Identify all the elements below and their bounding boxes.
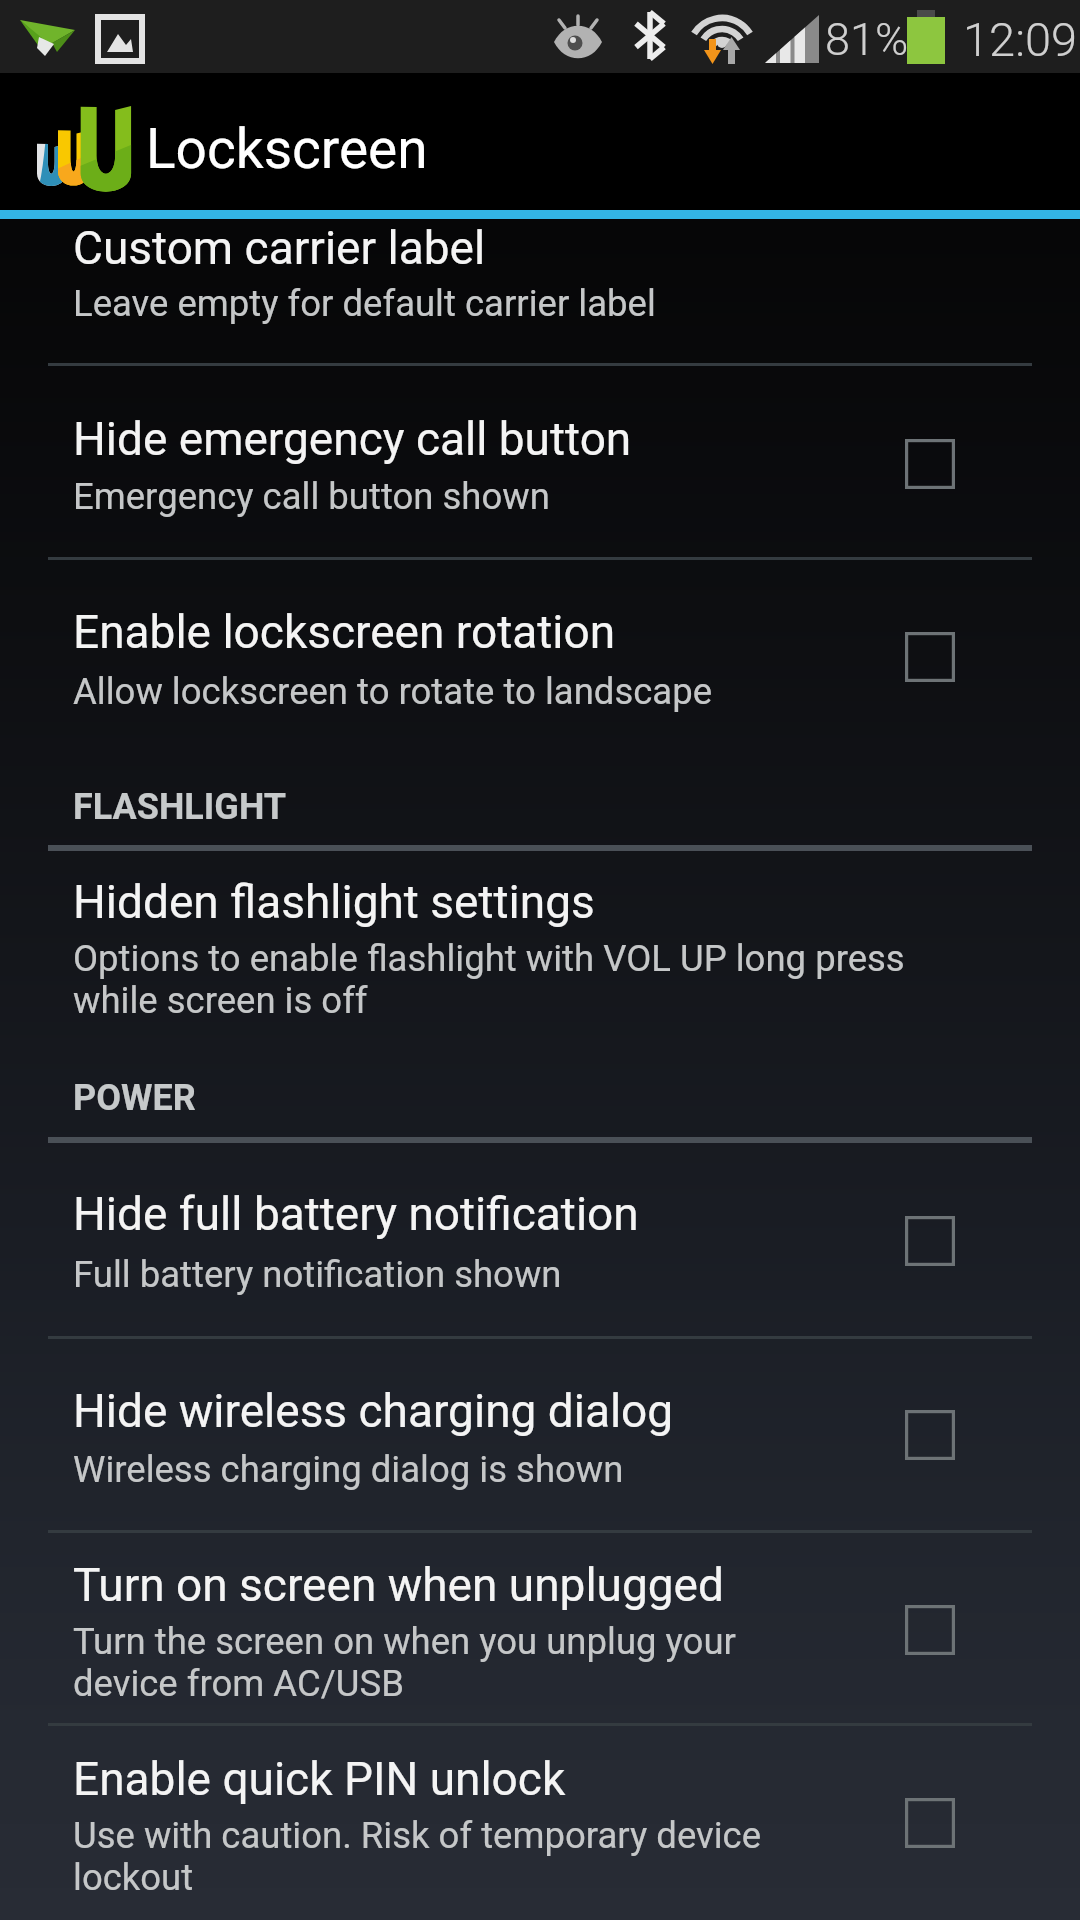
staticText: Turn the screen on when you unplug your … (73, 1621, 973, 1705)
staticText: Enable quick PIN unlock (73, 1752, 1080, 1806)
staticText: Hide emergency call button (73, 412, 1080, 466)
staticText: Emergency call button shown (73, 476, 1033, 518)
staticText: Turn on screen when unplugged (73, 1558, 1080, 1612)
staticText: Allow lockscreen to rotate to landscape (73, 671, 1033, 713)
button[interactable]: Custom carrier label (0, 220, 1080, 366)
staticText: Hide wireless charging dialog (73, 1384, 1080, 1438)
button[interactable]: Toggle Enable quick PIN unlock (870, 1774, 990, 1872)
button[interactable]: Toggle Enable lockscreen rotation (870, 608, 990, 706)
staticText: 12:09 (963, 12, 1078, 67)
button[interactable]: Hide emergency call button (0, 366, 1080, 560)
staticText: Wireless charging dialog is shown (73, 1449, 1033, 1491)
staticText: Use with caution. Risk of temporary devi… (73, 1815, 973, 1899)
staticText: Hidden flashlight settings (73, 875, 1080, 929)
button[interactable]: Hide wireless charging dialog (0, 1339, 1080, 1533)
staticText: Full battery notification shown (73, 1254, 1033, 1296)
staticText: Custom carrier label (73, 221, 1080, 275)
staticText: Enable lockscreen rotation (73, 605, 1080, 659)
button[interactable]: Enable quick PIN unlock (0, 1726, 1080, 1920)
other: Wanam app icon (0, 73, 1080, 210)
staticText: FLASHLIGHT (73, 786, 287, 828)
button[interactable]: Hide full battery notification (0, 1141, 1080, 1339)
staticText: Hide full battery notification (73, 1187, 1080, 1241)
button[interactable]: Toggle Hide full battery notification (870, 1192, 990, 1290)
button[interactable]: Wanam app icon (0, 73, 1080, 210)
staticText: Leave empty for default carrier label (73, 283, 1033, 325)
staticText: Options to enable flashlight with VOL UP… (73, 938, 1013, 1022)
button[interactable]: Toggle Hide wireless charging dialog (870, 1386, 990, 1484)
staticText: POWER (73, 1077, 196, 1119)
button[interactable]: Toggle Hide emergency call button (870, 415, 990, 513)
button[interactable]: Turn on screen when unplugged (0, 1533, 1080, 1726)
button[interactable]: Enable lockscreen rotation (0, 560, 1080, 770)
staticText: 81% (825, 13, 909, 66)
button[interactable]: Hidden flashlight settings (0, 849, 1080, 1060)
staticText: Lockscreen (146, 117, 428, 181)
button[interactable]: Toggle Turn on screen when unplugged (870, 1581, 990, 1679)
